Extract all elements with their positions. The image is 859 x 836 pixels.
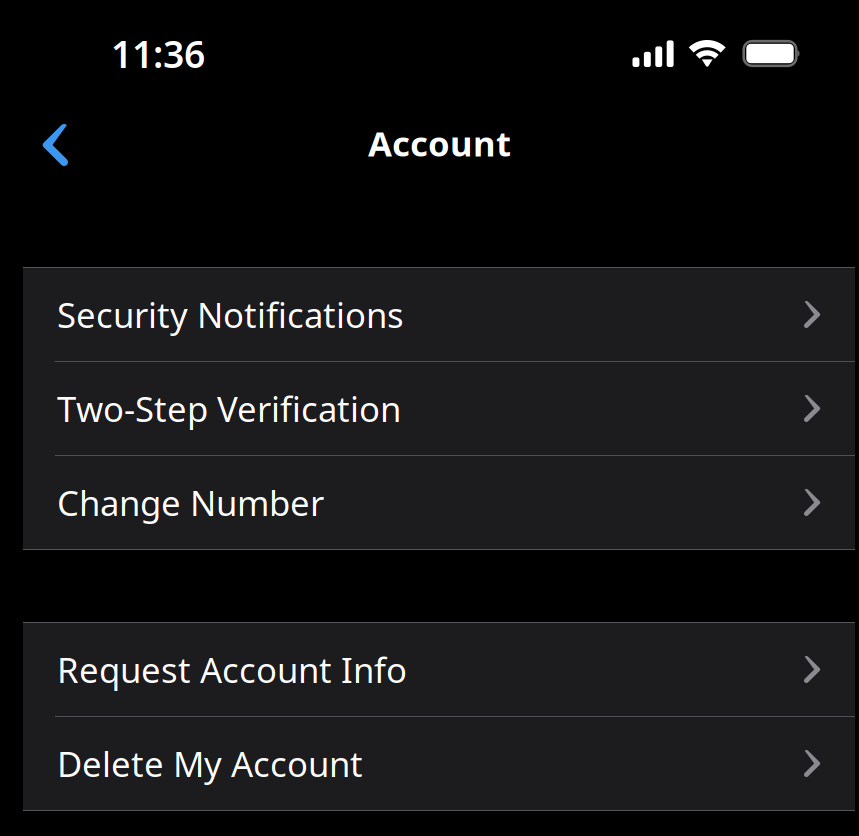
button[interactable]: Request Account Info — [23, 623, 855, 716]
staticText: Account — [368, 120, 511, 166]
staticText: 11:36 — [111, 29, 205, 78]
button[interactable]: Security Notifications — [23, 268, 855, 361]
staticText: Request Account Info — [57, 646, 407, 692]
button[interactable]: Delete My Account — [23, 717, 855, 810]
staticText: Delete My Account — [57, 740, 363, 786]
button[interactable]: Two-Step Verification — [23, 362, 855, 455]
button[interactable]: Change Number — [23, 456, 855, 549]
button[interactable]: Back — [0, 102, 96, 184]
staticText: Change Number — [57, 479, 324, 525]
staticText: Security Notifications — [57, 291, 404, 337]
staticText: Two-Step Verification — [57, 385, 401, 431]
